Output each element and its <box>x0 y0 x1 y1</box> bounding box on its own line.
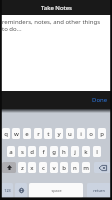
button[interactable]: i <box>77 128 85 139</box>
staticText: a <box>9 148 13 156</box>
staticText: s <box>21 148 24 156</box>
staticText: k <box>84 148 88 156</box>
button[interactable]: q <box>2 128 10 139</box>
staticText: c <box>42 164 45 172</box>
staticText: w <box>14 130 19 138</box>
button[interactable]: l <box>93 146 101 157</box>
button[interactable]: y <box>55 128 63 139</box>
staticText: i <box>80 130 82 138</box>
staticText: q <box>4 130 8 138</box>
staticText: g <box>52 148 56 156</box>
staticText: x <box>30 164 34 172</box>
staticText: b <box>62 164 66 172</box>
button[interactable]: space <box>29 183 83 198</box>
button[interactable]: e <box>23 128 31 139</box>
button[interactable]: k <box>82 146 90 157</box>
button[interactable]: g <box>50 146 58 157</box>
staticText: return <box>93 188 105 193</box>
button[interactable]: a <box>7 146 15 157</box>
staticText: p <box>100 130 104 138</box>
staticText: f <box>42 148 45 156</box>
staticText: u <box>68 130 72 138</box>
staticText: r <box>37 130 40 138</box>
staticText: Take Notes <box>41 4 72 12</box>
button[interactable]: Backspace <box>94 162 111 173</box>
button[interactable]: u <box>66 128 74 139</box>
button[interactable]: m <box>82 162 90 173</box>
button[interactable]: o <box>87 128 95 139</box>
button[interactable]: r <box>34 128 42 139</box>
staticText: l <box>96 148 98 156</box>
button[interactable]: Done <box>88 92 112 108</box>
button[interactable]: t <box>44 128 52 139</box>
button[interactable]: w <box>12 128 20 139</box>
button[interactable]: Shift <box>2 162 16 173</box>
button[interactable]: v <box>50 162 58 173</box>
staticText: Done <box>92 96 108 104</box>
staticText: j <box>74 148 76 156</box>
staticText: t <box>47 130 50 138</box>
button[interactable]: d <box>28 146 36 157</box>
button[interactable]: c <box>39 162 47 173</box>
button[interactable]: p <box>98 128 106 139</box>
staticText: h <box>62 148 66 156</box>
staticText: m <box>83 164 89 172</box>
staticText: d <box>30 148 34 156</box>
staticText: v <box>52 164 56 172</box>
button[interactable]: Next keyboard <box>15 183 27 198</box>
button[interactable]: return <box>87 183 111 198</box>
button[interactable]: j <box>71 146 79 157</box>
staticText: space <box>51 188 62 193</box>
staticText: z <box>21 164 24 172</box>
button[interactable]: x <box>28 162 36 173</box>
button[interactable]: z <box>18 162 26 173</box>
staticText: o <box>89 130 93 138</box>
staticText: e <box>25 130 29 138</box>
button[interactable]: h <box>60 146 68 157</box>
staticText: n <box>73 164 77 172</box>
button[interactable]: 123 <box>1 183 13 198</box>
button[interactable]: b <box>60 162 68 173</box>
button[interactable]: n <box>71 162 79 173</box>
staticText: y <box>57 130 61 138</box>
staticText: 123 <box>4 188 11 193</box>
button[interactable]: s <box>18 146 26 157</box>
staticText: reminders, notes, and other things to do… <box>2 18 102 33</box>
button[interactable]: f <box>39 146 47 157</box>
